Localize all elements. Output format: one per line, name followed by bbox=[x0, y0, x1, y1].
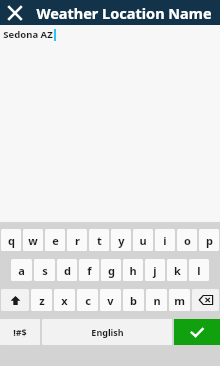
button[interactable]: r bbox=[67, 229, 87, 251]
button[interactable]: k bbox=[167, 259, 187, 281]
staticText: y bbox=[118, 233, 125, 248]
button[interactable]: w bbox=[23, 229, 43, 251]
staticText: w bbox=[28, 233, 38, 248]
button[interactable]: v bbox=[100, 289, 121, 311]
button[interactable]: f bbox=[79, 259, 99, 281]
button[interactable]: Close bbox=[0, 0, 30, 25]
staticText: v bbox=[107, 293, 114, 308]
button[interactable]: n bbox=[146, 289, 167, 311]
button[interactable]: x bbox=[54, 289, 75, 311]
button[interactable]: l bbox=[189, 259, 209, 281]
button[interactable]: p bbox=[199, 229, 219, 251]
staticText: e bbox=[52, 233, 59, 248]
staticText: k bbox=[174, 263, 181, 278]
staticText: English bbox=[91, 326, 124, 338]
button[interactable]: s bbox=[34, 259, 55, 281]
staticText: p bbox=[206, 233, 213, 248]
button[interactable]: i bbox=[155, 229, 175, 251]
button[interactable]: c bbox=[77, 289, 98, 311]
staticText: u bbox=[139, 233, 147, 248]
staticText: Sedona AZ bbox=[3, 28, 53, 41]
button[interactable]: a bbox=[11, 259, 32, 281]
button[interactable]: y bbox=[111, 229, 131, 251]
button[interactable]: d bbox=[57, 259, 77, 281]
staticText: d bbox=[64, 263, 71, 278]
button[interactable]: m bbox=[169, 289, 190, 311]
staticText: s bbox=[42, 263, 48, 278]
staticText: m bbox=[174, 293, 185, 308]
button[interactable]: u bbox=[133, 229, 153, 251]
button[interactable]: e bbox=[45, 229, 65, 251]
button[interactable]: q bbox=[1, 229, 21, 251]
staticText: z bbox=[39, 293, 45, 308]
button[interactable]: t bbox=[89, 229, 109, 251]
staticText: r bbox=[75, 233, 80, 248]
button[interactable]: h bbox=[123, 259, 143, 281]
staticText: i bbox=[163, 233, 167, 248]
staticText: n bbox=[153, 293, 161, 308]
button[interactable]: o bbox=[177, 229, 197, 251]
staticText: x bbox=[61, 293, 68, 308]
button[interactable]: z bbox=[31, 289, 52, 311]
button[interactable]: g bbox=[101, 259, 121, 281]
staticText: f bbox=[87, 263, 92, 278]
staticText: c bbox=[85, 293, 91, 308]
staticText: b bbox=[130, 293, 137, 308]
button[interactable]: j bbox=[145, 259, 165, 281]
staticText: Weather Location Name bbox=[36, 3, 212, 23]
staticText: l bbox=[197, 263, 201, 278]
staticText: t bbox=[97, 233, 102, 248]
staticText: o bbox=[184, 233, 191, 248]
staticText: j bbox=[153, 263, 157, 278]
staticText: !#$ bbox=[13, 326, 27, 338]
button[interactable]: Sedona AZ bbox=[0, 25, 220, 42]
button[interactable]: English bbox=[42, 319, 172, 345]
staticText: g bbox=[108, 263, 115, 278]
staticText: a bbox=[18, 263, 25, 278]
button[interactable]: Done bbox=[174, 319, 220, 345]
button[interactable]: b bbox=[123, 289, 144, 311]
staticText: h bbox=[129, 263, 137, 278]
staticText: q bbox=[8, 233, 15, 248]
button[interactable]: Backspace bbox=[192, 289, 219, 311]
button[interactable]: !#$ bbox=[0, 319, 40, 345]
button[interactable]: Shift bbox=[1, 289, 29, 311]
